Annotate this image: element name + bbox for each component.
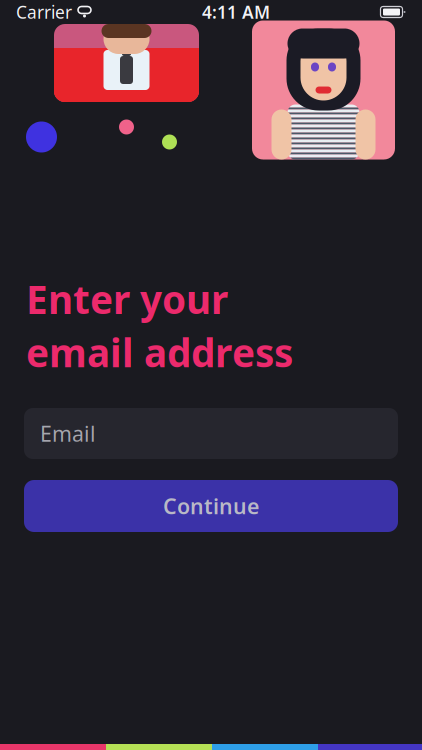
button[interactable]: Email [24, 408, 398, 459]
staticText: 4:11 AM [202, 0, 270, 23]
staticText: Carrier [16, 0, 72, 23]
button[interactable]: Continue [24, 480, 398, 532]
staticText: Email [40, 419, 96, 448]
staticText: Enter your [26, 273, 228, 325]
staticText: Continue [163, 492, 259, 520]
staticText: email address [26, 327, 293, 378]
